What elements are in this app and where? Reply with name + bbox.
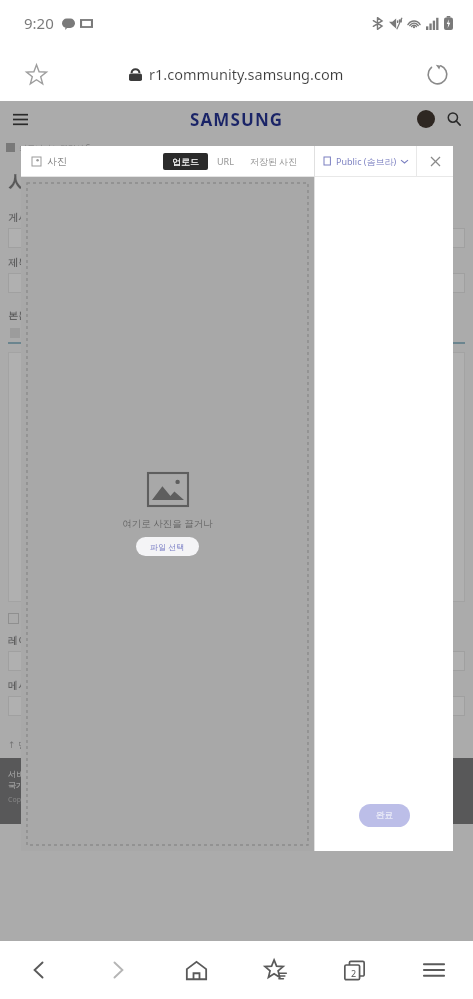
- staticText: 알림 받기: [24, 612, 63, 624]
- staticText: URL: [217, 155, 234, 167]
- button[interactable]: Reload: [417, 54, 457, 94]
- staticText: 여기로 사진을 끌거나: [122, 517, 213, 530]
- button[interactable]: Menu: [394, 941, 473, 999]
- staticText: SAMSUNG: [190, 108, 284, 131]
- staticText: 업로드: [172, 156, 199, 167]
- staticText: 시작하기: [8, 169, 96, 197]
- staticText: Public (솜브라): [336, 155, 397, 167]
- button[interactable]: Back: [0, 941, 78, 999]
- staticText: Copyright © 1995-2024 SAMSUNG: [8, 795, 120, 805]
- staticText: 게시판: [8, 211, 38, 224]
- staticText: 사진: [47, 155, 67, 168]
- staticText: 파일 선택: [150, 541, 185, 552]
- staticText: r1.community.samsung.com: [149, 64, 344, 84]
- staticText: ↑ 맨 위로: [8, 738, 48, 750]
- button[interactable]: 저장된 사진: [243, 152, 305, 170]
- staticText: 제목: [8, 256, 28, 269]
- staticText: 메시지: [8, 679, 38, 692]
- button[interactable]: 파일 선택: [136, 537, 199, 556]
- button[interactable]: URL: [208, 152, 243, 170]
- staticText: 2: [351, 967, 357, 979]
- button[interactable]: Profile: [417, 110, 435, 128]
- button[interactable]: 완료: [359, 804, 410, 827]
- button[interactable]: Search: [441, 106, 467, 132]
- staticText: 9:20: [24, 13, 54, 33]
- staticText: 서비스 약관 개인정보 보호: [8, 768, 105, 779]
- button[interactable]: Home: [157, 941, 236, 999]
- button[interactable]: Close: [417, 146, 453, 176]
- staticText: 완료: [376, 810, 393, 821]
- staticText: 저장된 사진: [250, 155, 298, 167]
- button[interactable]: Tabs: [315, 941, 394, 999]
- staticText: 국가/지역 선택: [8, 779, 62, 790]
- button[interactable]: Bookmark: [16, 54, 56, 94]
- button[interactable]: Bookmarks: [236, 941, 315, 999]
- staticText: 레이블: [8, 634, 38, 647]
- button[interactable]: Menu: [4, 103, 36, 135]
- staticText: 커뮤니티 > 갤럭시 S: [19, 142, 91, 153]
- button[interactable]: Forward: [78, 941, 157, 999]
- button[interactable]: Public (솜브라): [324, 155, 408, 167]
- staticText: 본문: [8, 309, 28, 322]
- button[interactable]: r1.community.samsung.com: [129, 64, 344, 84]
- button[interactable]: 업로드: [163, 153, 208, 170]
